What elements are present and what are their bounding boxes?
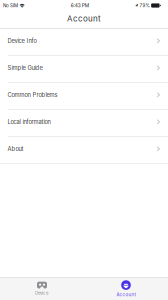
button[interactable]: About: [0, 137, 168, 163]
button[interactable]: Common Problems: [0, 83, 168, 109]
button[interactable]: Device Info: [0, 29, 168, 55]
staticText: Local information: [8, 118, 51, 125]
staticText: Common Problems: [8, 91, 58, 98]
staticText: Account: [67, 14, 101, 23]
staticText: No SIM: [3, 3, 18, 8]
staticText: Simple Guide: [8, 64, 43, 71]
button[interactable]: Account: [84, 277, 168, 300]
staticText: Account: [116, 292, 135, 297]
staticText: Device Info: [8, 37, 37, 44]
button[interactable]: Local information: [0, 110, 168, 136]
staticText: About: [8, 145, 24, 152]
staticText: 79%: [140, 3, 150, 8]
staticText: 6:43 PM: [71, 3, 89, 8]
button[interactable]: Device: [0, 277, 84, 300]
staticText: Device: [35, 290, 49, 296]
button[interactable]: Simple Guide: [0, 56, 168, 82]
